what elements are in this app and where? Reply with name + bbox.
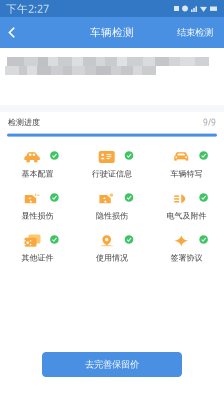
- staticText: 电气及附件: [167, 211, 207, 221]
- staticText: 显性损伤: [21, 211, 53, 221]
- staticText: 下午2:27: [6, 1, 49, 16]
- staticText: 隐性损伤: [96, 211, 128, 221]
- button[interactable]: 使用情况: [75, 229, 149, 271]
- staticText: 去完善保留价: [85, 359, 139, 370]
- staticText: 车辆特写: [171, 169, 203, 179]
- staticText: 使用情况: [96, 253, 128, 263]
- button[interactable]: 基本配置: [0, 145, 75, 187]
- button[interactable]: 显性损伤: [0, 187, 75, 229]
- staticText: 签署协议: [171, 253, 203, 263]
- staticText: 结束检测: [177, 27, 213, 38]
- staticText: 检测进度: [8, 117, 40, 127]
- button[interactable]: Back: [0, 17, 44, 48]
- staticText: 基本配置: [21, 169, 53, 179]
- button[interactable]: 行驶证信息: [75, 145, 149, 187]
- button[interactable]: 去完善保留价: [42, 352, 182, 377]
- staticText: 其他证件: [21, 253, 53, 263]
- button[interactable]: 结束检测: [162, 17, 224, 48]
- button[interactable]: 隐性损伤: [75, 187, 149, 229]
- button[interactable]: 签署协议: [149, 229, 224, 271]
- button[interactable]: 电气及附件: [149, 187, 224, 229]
- staticText: 行驶证信息: [92, 169, 132, 179]
- staticText: 车辆检测: [90, 26, 134, 39]
- button[interactable]: 其他证件: [0, 229, 75, 271]
- button[interactable]: 车辆特写: [149, 145, 224, 187]
- staticText: 9/9: [203, 117, 216, 128]
